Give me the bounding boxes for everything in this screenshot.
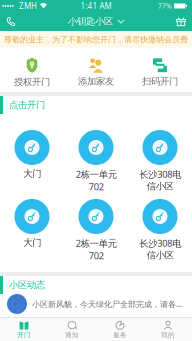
staticText: 服务 xyxy=(113,331,127,339)
button[interactable]: 通知 xyxy=(48,317,96,341)
button[interactable]: 扫码开门 xyxy=(128,48,192,92)
staticText: 小区动态 xyxy=(9,279,45,291)
button[interactable]: 小钥匙小区 xyxy=(62,12,130,31)
button[interactable]: Call property office xyxy=(0,12,24,31)
button[interactable]: 2栋一单元702 xyxy=(64,199,128,256)
staticText: 大门 xyxy=(23,168,41,179)
staticText: 2栋一单元702 xyxy=(75,237,116,262)
staticText: 添加家友 xyxy=(78,76,114,87)
button[interactable]: 授权开门 xyxy=(0,47,64,93)
button[interactable]: 我的 xyxy=(144,317,192,341)
staticText: 尊敬的业主，为了不影响您开门，请尽快缴纳会员费 xyxy=(4,35,188,44)
staticText: 77% xyxy=(158,2,172,10)
button[interactable]: 开门 xyxy=(0,317,48,341)
staticText: ZMH xyxy=(19,1,37,11)
staticText: 小区新风貌，今天绿化尸全部完成，请各位业 xyxy=(32,299,183,309)
staticText: 小钥匙小区 xyxy=(68,16,113,27)
staticText: 通知 xyxy=(65,331,79,339)
button[interactable]: Gifts xyxy=(168,12,192,31)
staticText: 点击开门 xyxy=(9,99,45,111)
button[interactable]: 长沙308电信小区 xyxy=(128,130,192,187)
button[interactable]: 2栋一单元702 xyxy=(64,130,128,187)
staticText: 授权开门 xyxy=(14,76,50,88)
staticText: 2栋一单元702 xyxy=(75,168,116,193)
staticText: 我的 xyxy=(161,331,175,339)
staticText: 开门 xyxy=(17,331,31,339)
button[interactable]: 小区新风貌，今天绿化尸全部完成，请各位业 xyxy=(0,294,192,317)
staticText: 大门 xyxy=(23,237,41,248)
button[interactable]: 添加家友 xyxy=(64,48,128,92)
staticText: 长沙308电信小区 xyxy=(139,168,181,192)
staticText: 1:41 AM xyxy=(80,1,111,11)
button[interactable]: 服务 xyxy=(96,317,144,341)
staticText: 长沙308电信小区 xyxy=(139,237,181,261)
button[interactable]: 长沙308电信小区 xyxy=(128,199,192,256)
button[interactable]: 大门 xyxy=(0,130,64,187)
staticText: 扫码开门 xyxy=(142,76,178,87)
button[interactable]: 大门 xyxy=(0,199,64,256)
